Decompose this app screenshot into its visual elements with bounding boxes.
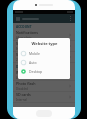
staticText: Automatic [16,76,30,80]
staticText: 2.4 GB used [16,58,33,62]
staticText: Auto [29,60,37,65]
button[interactable]: Sync frequency [13,41,75,52]
staticText: Notifications [16,30,38,35]
staticText: Sync frequency [16,41,43,46]
button[interactable]: Auto [18,58,70,67]
button[interactable]: SD cards [13,92,75,103]
staticText: Internal [16,98,27,102]
staticText: Mobile [29,51,40,56]
staticText: ACCOUNT [16,25,32,29]
button[interactable]: Menu [15,16,20,21]
staticText: Website layout [16,70,42,75]
staticText: Disabled [16,87,28,91]
button[interactable]: Desktop [18,67,70,76]
staticText: Desktop [29,69,43,74]
button[interactable]: Storage [13,52,75,63]
button[interactable]: More options [68,16,73,21]
staticText: Every 15 minutes [16,47,40,51]
staticText: Photo flash [16,81,36,86]
button[interactable]: Website layout [13,70,75,81]
staticText: Storage [16,52,30,57]
staticText: Website type [31,41,58,46]
staticText: SD cards [16,92,31,97]
button[interactable]: Photo flash [13,81,75,92]
staticText: DISPLAY [16,65,30,69]
button[interactable]: Notifications [13,30,75,41]
staticText: Allow alerts [16,36,32,40]
button[interactable]: Mobile [18,49,70,58]
